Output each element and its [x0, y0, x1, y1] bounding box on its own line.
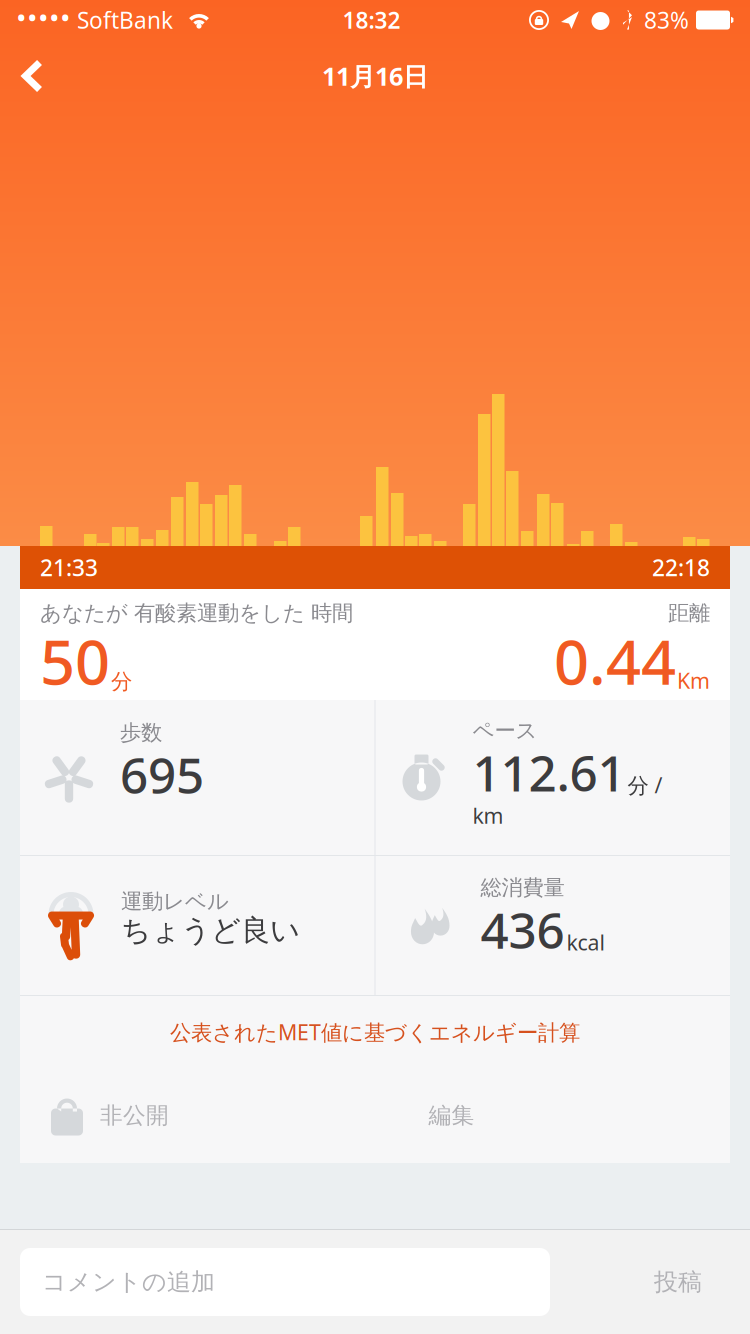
staticText: あなたが 有酸素運動をした 時間	[40, 600, 353, 626]
staticText: 運動レベル	[121, 888, 229, 915]
staticText: 歩数	[120, 720, 162, 746]
button[interactable]: 編集	[416, 1102, 486, 1129]
staticText: 編集	[428, 1102, 474, 1129]
staticText: 11月16日	[322, 59, 428, 93]
staticText: Km	[677, 666, 710, 695]
staticText: 18:32	[342, 5, 400, 35]
staticText: 分	[111, 668, 132, 695]
button[interactable]: Back	[0, 43, 65, 109]
button[interactable]: 投稿	[626, 1248, 730, 1316]
staticText: 投稿	[654, 1267, 702, 1297]
staticText: 695	[120, 742, 204, 807]
staticText: 距離	[668, 600, 710, 626]
staticText: 分 /	[627, 771, 662, 799]
staticText: 22:18	[652, 552, 710, 582]
button[interactable]: コメントの追加	[20, 1248, 550, 1316]
button[interactable]: 非公開	[46, 1094, 173, 1136]
staticText: 50	[40, 620, 110, 702]
staticText: SoftBank	[71, 5, 173, 35]
staticText: 21:33	[40, 552, 98, 582]
staticText: 総消費量	[480, 875, 564, 901]
staticText: 公表されたMET値に基づくエネルギー計算	[170, 1018, 580, 1046]
staticText: km	[472, 801, 503, 829]
staticText: ペース	[472, 717, 537, 744]
staticText: 非公開	[100, 1102, 169, 1129]
staticText: kcal	[566, 928, 605, 956]
staticText: •••••	[16, 0, 71, 36]
staticText: 83%	[644, 5, 689, 35]
staticText: 0.44	[554, 620, 676, 702]
staticText: コメントの追加	[42, 1267, 215, 1297]
staticText: 436	[480, 897, 564, 962]
staticText: 112.61	[472, 740, 625, 805]
staticText: ちょうど良い	[121, 913, 300, 949]
